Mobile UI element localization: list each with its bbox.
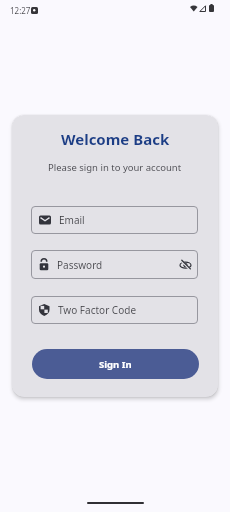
staticText: Please sign in to your account [48, 161, 182, 174]
button[interactable]: Two Factor Code [31, 296, 198, 324]
staticText: Email [59, 213, 85, 227]
button[interactable]: Sign In [32, 349, 199, 379]
staticText: Password [57, 258, 103, 272]
staticText: 12:27 [10, 5, 31, 16]
staticText: Sign In [99, 358, 132, 371]
button[interactable]: Password [31, 250, 198, 279]
staticText: Welcome Back [61, 129, 170, 149]
staticText: Two Factor Code [58, 303, 137, 317]
button[interactable]: Email [31, 206, 198, 234]
